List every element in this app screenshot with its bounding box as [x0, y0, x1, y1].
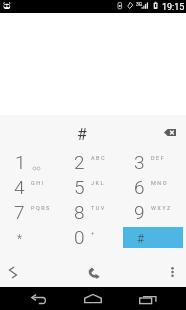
staticText: DEF [151, 155, 166, 161]
staticText: + [91, 230, 96, 236]
staticText: TUV [91, 205, 106, 211]
button[interactable]: 0 [63, 227, 123, 248]
button[interactable]: Recent apps [136, 287, 160, 310]
button[interactable]: More options [160, 260, 184, 284]
staticText: # [77, 125, 87, 144]
staticText: 5 [74, 176, 85, 197]
button[interactable]: 4 [3, 177, 63, 198]
button[interactable]: 2 [63, 152, 123, 173]
button[interactable]: 6 [123, 177, 183, 198]
staticText: 7 [14, 201, 25, 222]
staticText: 0 [74, 226, 85, 247]
staticText: 2 [74, 151, 85, 172]
staticText: 19:15 [162, 2, 185, 13]
staticText: 8 [74, 201, 85, 222]
button[interactable]: # [123, 227, 183, 248]
button[interactable]: 1 [3, 152, 63, 173]
staticText: 9 [134, 201, 145, 222]
staticText: 3 [134, 151, 145, 172]
button[interactable]: 9 [123, 202, 183, 223]
button[interactable]: Home [81, 287, 105, 310]
button[interactable]: 8 [63, 202, 123, 223]
staticText: MNO [151, 180, 168, 186]
staticText: ABC [91, 155, 106, 161]
staticText: 4 [14, 176, 25, 197]
button[interactable]: * [3, 227, 63, 248]
staticText: 1 [15, 151, 26, 172]
staticText: 6 [134, 176, 145, 197]
button[interactable]: 7 [3, 202, 63, 223]
button[interactable]: Back [26, 287, 50, 310]
staticText: 3G [136, 1, 143, 7]
staticText: # [137, 232, 144, 246]
staticText: PQRS [31, 205, 51, 211]
button[interactable]: Backspace [158, 121, 182, 143]
staticText: JKL [91, 180, 105, 186]
staticText: WXYZ [151, 205, 172, 211]
staticText: * [17, 232, 23, 246]
button[interactable]: 5 [63, 177, 123, 198]
button[interactable]: 3 [123, 152, 183, 173]
button[interactable]: Call [80, 260, 106, 286]
staticText: GHI [31, 180, 45, 186]
button[interactable]: Dial assist [1, 260, 25, 284]
